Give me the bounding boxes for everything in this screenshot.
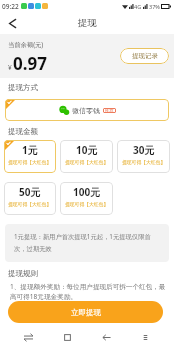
- staticText: 100元: [73, 185, 101, 199]
- button[interactable]: Switch apps: [18, 327, 38, 347]
- staticText: 提现可得【大红包】: [122, 159, 166, 165]
- staticText: 50元: [19, 185, 41, 199]
- staticText: 微信零钱: [72, 106, 100, 115]
- button[interactable]: 50元: [4, 182, 56, 215]
- staticText: 09:22: [2, 2, 19, 11]
- button[interactable]: 1元: [4, 140, 56, 173]
- button[interactable]: Home: [57, 327, 77, 347]
- staticText: 提现金额: [8, 127, 38, 136]
- button[interactable]: 提现记录: [120, 48, 169, 64]
- staticText: ¥: [8, 63, 12, 72]
- staticText: 37%: [149, 3, 160, 10]
- button[interactable]: 10元: [60, 140, 113, 173]
- staticText: 提现方式: [8, 83, 38, 92]
- staticText: 提现记录: [132, 52, 158, 60]
- staticText: 10元: [76, 143, 98, 157]
- button[interactable]: 100元: [60, 182, 113, 215]
- button[interactable]: Menu: [135, 327, 155, 347]
- staticText: 提现规则: [8, 269, 38, 278]
- staticText: 提现可得【大红包】: [65, 159, 109, 165]
- staticText: 4G: [134, 3, 142, 10]
- staticText: 1、提现额外奖励：每位用户提现后可拆一个红包，最高可得18元现金奖励。: [10, 282, 168, 300]
- staticText: 当前余额(元): [8, 40, 44, 49]
- staticText: 提现可得【大红包】: [8, 201, 52, 207]
- button[interactable]: Back: [4, 15, 20, 31]
- button[interactable]: 30元: [117, 140, 170, 173]
- button[interactable]: 微信零钱: [5, 99, 169, 121]
- staticText: 推荐: [105, 108, 114, 113]
- staticText: 0.97: [13, 52, 47, 75]
- staticText: 立即提现: [71, 308, 101, 317]
- staticText: 1元提现：新用户首次提现1元起，1元提现仅限首次，过期无效: [14, 232, 160, 253]
- staticText: 1元: [22, 143, 38, 157]
- staticText: 提现: [78, 17, 97, 29]
- staticText: 提现可得【大红包】: [8, 159, 52, 165]
- staticText: 提现可得【大红包】: [65, 201, 109, 207]
- staticText: 30元: [133, 143, 155, 157]
- button[interactable]: Back: [96, 327, 116, 347]
- button[interactable]: 立即提现: [8, 301, 163, 323]
